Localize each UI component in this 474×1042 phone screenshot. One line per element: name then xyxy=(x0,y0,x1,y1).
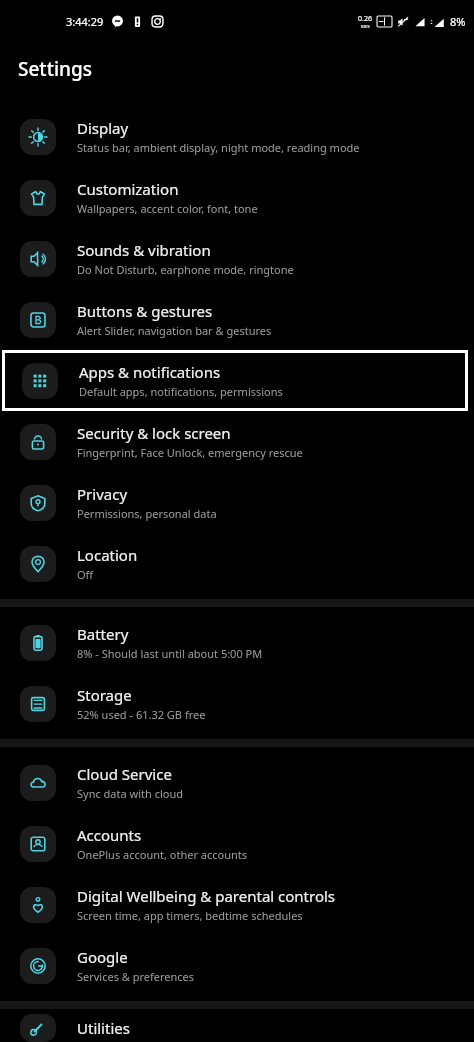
staticText: Customization xyxy=(77,179,179,199)
staticText: Storage xyxy=(77,685,132,705)
staticText: Default apps, notifications, permissions xyxy=(79,384,283,399)
staticText: Wallpapers, accent color, font, tone xyxy=(77,201,258,216)
staticText: Settings xyxy=(18,56,92,82)
button[interactable]: Cloud Service xyxy=(0,752,474,813)
staticText: Apps & notifications xyxy=(79,362,221,382)
button[interactable]: Apps & notifications xyxy=(2,350,468,411)
staticText: Utilities xyxy=(77,1018,130,1038)
button[interactable]: Privacy xyxy=(0,472,474,533)
staticText: 52% used - 61.32 GB free xyxy=(77,707,206,722)
staticText: Screen time, app timers, bedtime schedul… xyxy=(77,908,303,923)
staticText: 8% xyxy=(450,14,466,29)
button[interactable]: Storage xyxy=(0,673,474,734)
button[interactable]: Accounts xyxy=(0,813,474,874)
staticText: Accounts xyxy=(77,825,142,845)
button[interactable]: Utilities xyxy=(0,1014,474,1042)
staticText: Status bar, ambient display, night mode,… xyxy=(77,140,360,155)
button[interactable]: Digital Wellbeing & parental controls xyxy=(0,874,474,935)
button[interactable]: Sounds & vibration xyxy=(0,228,474,289)
staticText: Cloud Service xyxy=(77,764,172,784)
button[interactable]: Display xyxy=(0,106,474,167)
button[interactable]: Battery xyxy=(0,612,474,673)
staticText: 8% - Should last until about 5:00 PM xyxy=(77,646,263,661)
staticText: Sounds & vibration xyxy=(77,240,211,260)
staticText: Fingerprint, Face Unlock, emergency resc… xyxy=(77,445,303,460)
staticText: Buttons & gestures xyxy=(77,301,213,321)
staticText: Sync data with cloud xyxy=(77,786,183,801)
staticText: OnePlus account, other accounts xyxy=(77,847,248,862)
button[interactable]: Location xyxy=(0,533,474,594)
staticText: Services & preferences xyxy=(77,969,195,984)
staticText: 3:44:29 xyxy=(66,14,104,29)
staticText: Permissions, personal data xyxy=(77,506,217,521)
staticText: Privacy xyxy=(77,484,128,504)
staticText: 0.26 xyxy=(358,14,372,24)
button[interactable]: Buttons & gestures xyxy=(0,289,474,350)
staticText: Do Not Disturb, earphone mode, ringtone xyxy=(77,262,294,277)
staticText: Display xyxy=(77,118,129,138)
staticText: KB/S xyxy=(361,24,370,29)
staticText: Battery xyxy=(77,624,129,644)
button[interactable]: Security & lock screen xyxy=(0,411,474,472)
staticText: Google xyxy=(77,947,128,967)
button[interactable]: Google xyxy=(0,935,474,996)
staticText: Digital Wellbeing & parental controls xyxy=(77,886,336,906)
staticText: Security & lock screen xyxy=(77,423,231,443)
staticText: Location xyxy=(77,545,138,565)
button[interactable]: Customization xyxy=(0,167,474,228)
staticText: Alert Slider, navigation bar & gestures xyxy=(77,323,272,338)
staticText: Off xyxy=(77,567,94,582)
